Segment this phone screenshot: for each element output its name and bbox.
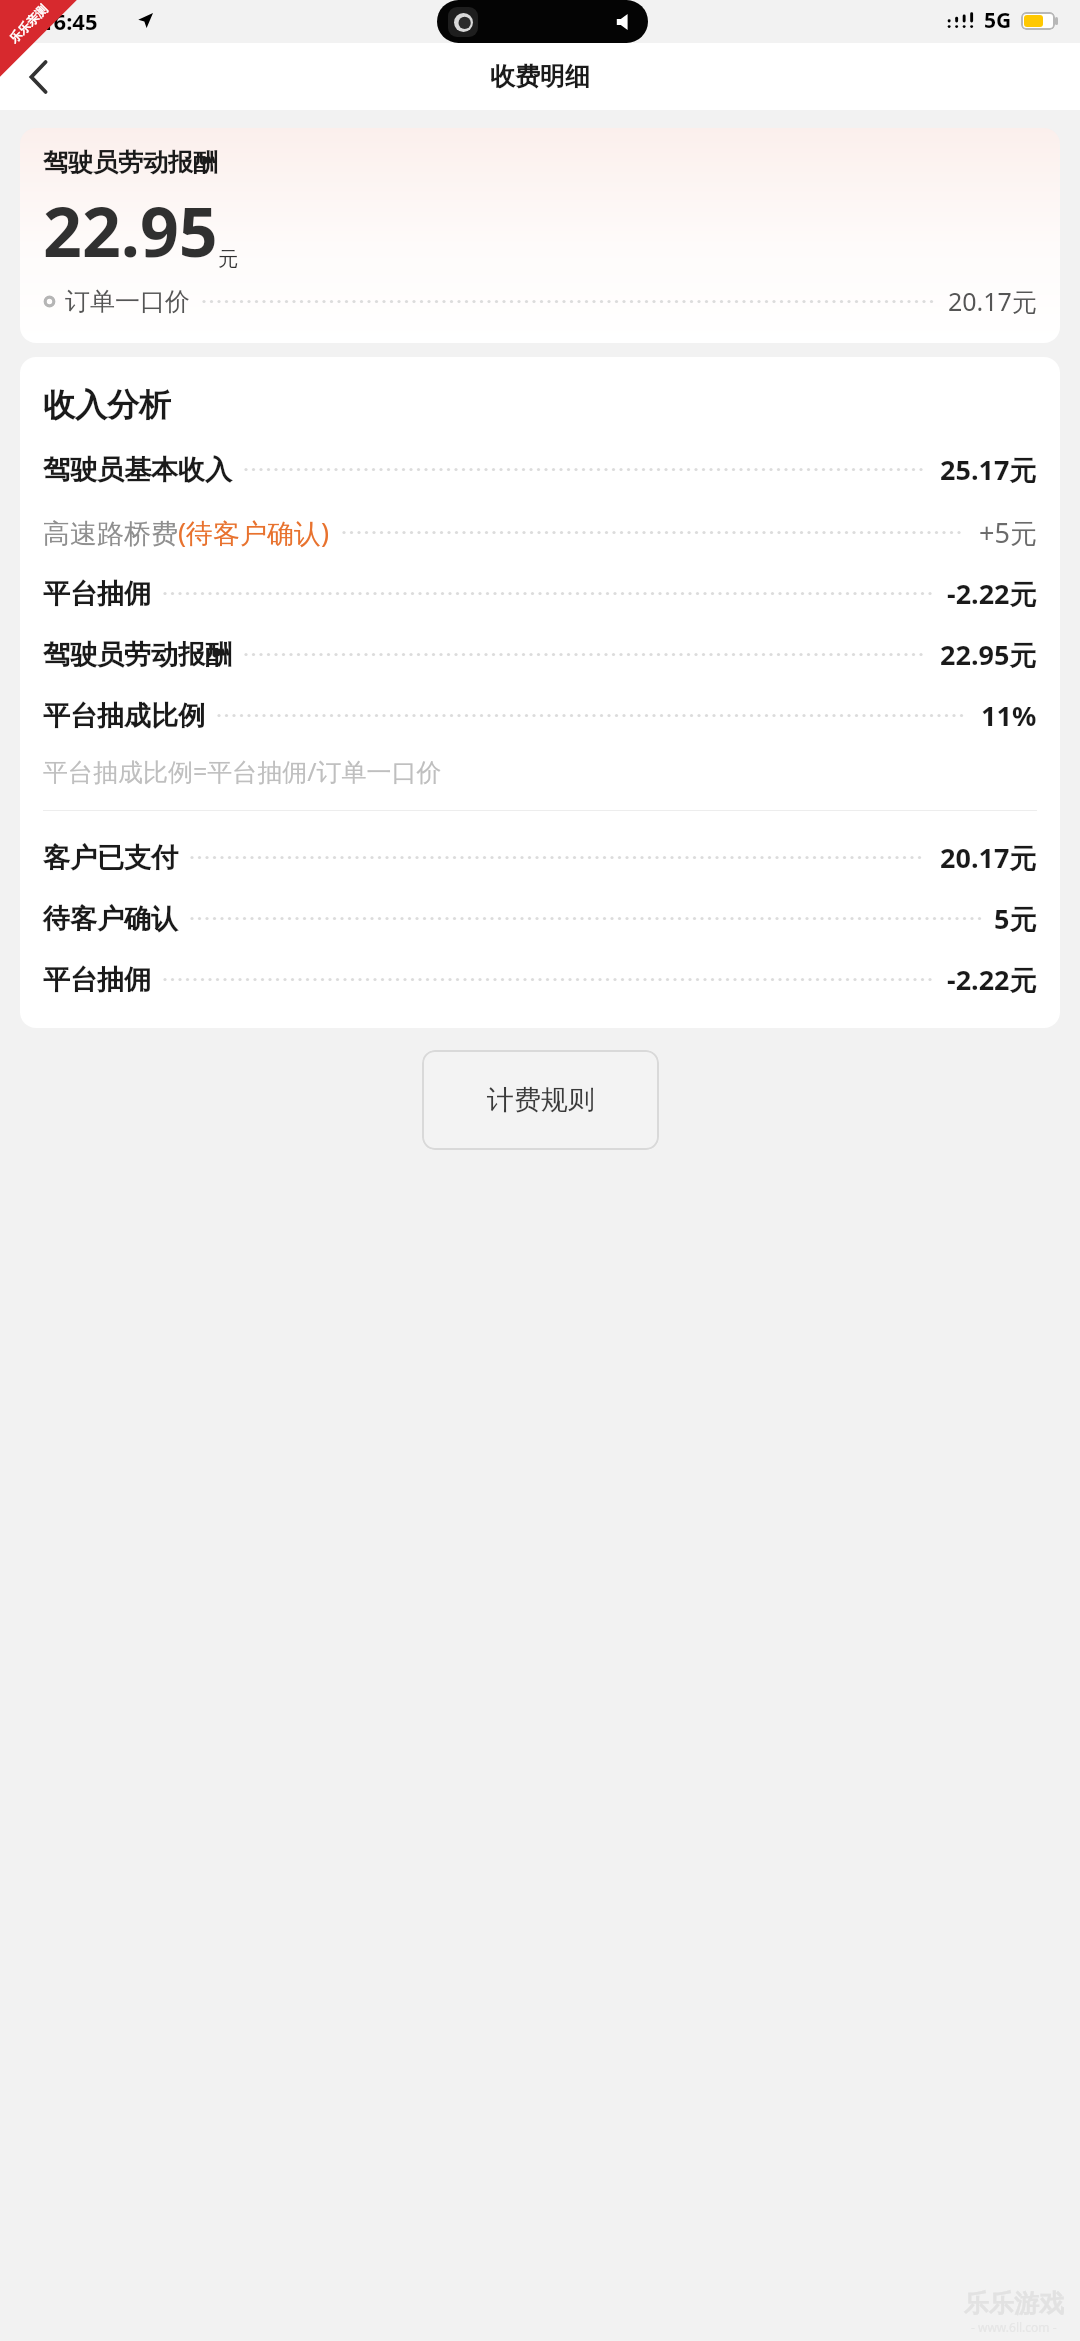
staticText: 计费规则 [487,1083,595,1117]
staticText: 驾驶员劳动报酬 [43,638,232,672]
staticText: 平台抽成比例=平台抽佣/订单一口价 [43,754,442,788]
button[interactable]: 计费规则 [422,1050,659,1150]
staticText: - www.6ll.com - [971,2319,1057,2335]
staticText: +5元 [979,514,1037,551]
staticText: 20.17元 [948,284,1037,318]
button[interactable]: 平台抽成比例 [43,697,1037,734]
staticText: -2.22元 [947,575,1037,612]
staticText: 5元 [994,900,1037,937]
staticText: 平台抽成比例 [43,699,205,733]
staticText: 驾驶员基本收入 [43,453,232,487]
button[interactable]: 驾驶员基本收入 [43,451,1037,488]
staticText: 待客户确认 [43,902,178,936]
button[interactable]: Back [0,43,76,110]
staticText: 平台抽佣 [43,577,151,611]
staticText: 22.95元 [940,636,1037,673]
staticText: 乐乐游戏 [964,2288,1064,2319]
staticText: 收入分析 [43,385,171,425]
button[interactable]: 平台抽佣 [43,961,1037,998]
staticText: 乐乐亲测 [6,1,50,46]
button[interactable]: 待客户确认 [43,900,1037,937]
staticText: 20.17元 [940,839,1037,876]
staticText: 驾驶员劳动报酬 [43,147,218,178]
staticText: 订单一口价 [65,286,190,317]
button[interactable]: 平台抽佣 [43,575,1037,612]
staticText: 元 [218,247,238,272]
staticText: 16:45 [41,6,98,36]
staticText: 22.95 [43,184,218,277]
staticText: 25.17元 [940,451,1037,488]
staticText: -2.22元 [947,961,1037,998]
button[interactable]: 客户已支付 [43,839,1037,876]
staticText: 收费明细 [490,61,590,92]
staticText: 5G [984,6,1012,35]
button[interactable]: 高速路桥费(待客户确认) [43,514,1037,551]
staticText: 11% [981,697,1037,734]
staticText: 客户已支付 [43,841,178,875]
staticText: 平台抽佣 [43,963,151,997]
button[interactable]: 驾驶员劳动报酬 [20,128,1060,343]
staticText: 高速路桥费(待客户确认) [43,514,330,551]
button[interactable]: 驾驶员劳动报酬 [43,636,1037,673]
